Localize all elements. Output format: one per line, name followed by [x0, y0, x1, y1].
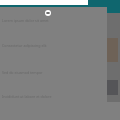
button[interactable]: Incididunt ut labore et dolore ma: [2, 94, 56, 100]
button[interactable]: Lorem ipsum dolor sit amet consec: [2, 18, 59, 24]
button[interactable]: Sed do eiusmod tempor: [2, 69, 47, 75]
staticText: Lorem ipsum dolor sit amet consec: [2, 18, 59, 24]
staticText: Consectetur adipiscing elit sed: [2, 43, 52, 49]
staticText: Incididunt ut labore et dolore ma: [2, 94, 56, 100]
staticText: Sed do eiusmod tempor: [2, 70, 43, 75]
button[interactable]: Consectetur adipiscing elit sed: [2, 43, 52, 49]
button[interactable]: Refresh: [45, 10, 51, 16]
